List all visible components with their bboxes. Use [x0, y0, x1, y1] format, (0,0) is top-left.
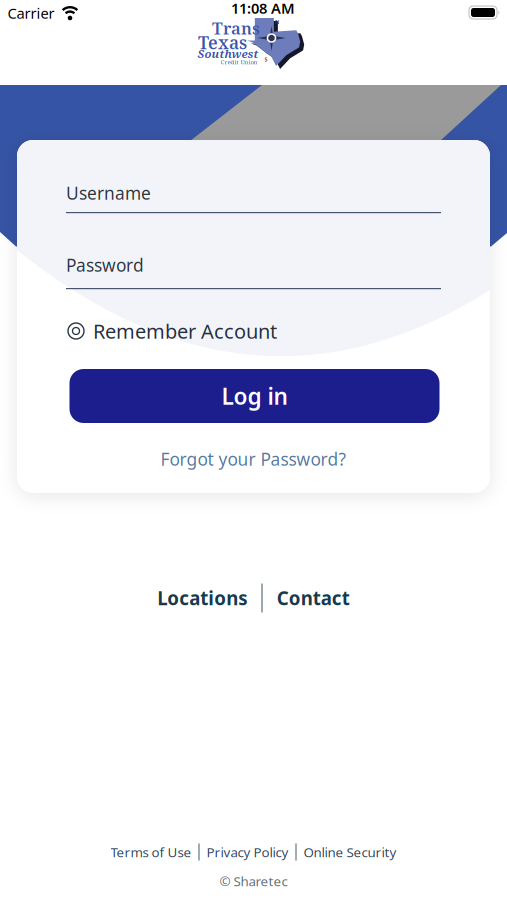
staticText: Log in — [221, 381, 287, 411]
staticText: 11:08 AM — [231, 0, 295, 18]
button[interactable]: Password — [66, 253, 441, 291]
button[interactable]: Locations — [157, 586, 247, 610]
staticText: Credit Union — [220, 58, 257, 66]
staticText: Online Security — [303, 843, 396, 861]
staticText: Contact — [277, 586, 350, 610]
staticText: Carrier — [7, 3, 54, 23]
button[interactable]: Contact — [277, 586, 350, 610]
staticText: Locations — [157, 586, 247, 610]
staticText: Forgot your Password? — [160, 447, 346, 470]
button[interactable]: Username — [66, 181, 441, 215]
button[interactable]: Remember Account — [68, 318, 277, 344]
button[interactable]: Forgot your Password? — [160, 447, 346, 470]
staticText: Remember Account — [93, 318, 277, 344]
button[interactable]: Terms of Use — [110, 843, 191, 861]
staticText: S — [264, 56, 267, 63]
staticText: Terms of Use — [110, 843, 191, 861]
button[interactable]: Log in — [69, 369, 439, 423]
staticText: Trans — [212, 17, 260, 39]
button[interactable]: Privacy Policy — [206, 843, 288, 861]
staticText: Southwest — [197, 46, 258, 61]
staticText: N — [275, 18, 279, 26]
staticText: Username — [66, 181, 151, 204]
staticText: Texas — [198, 31, 247, 54]
button[interactable]: Online Security — [303, 843, 396, 861]
staticText: © Sharetec — [219, 872, 287, 890]
staticText: Privacy Policy — [206, 843, 288, 861]
staticText: Password — [66, 253, 144, 276]
